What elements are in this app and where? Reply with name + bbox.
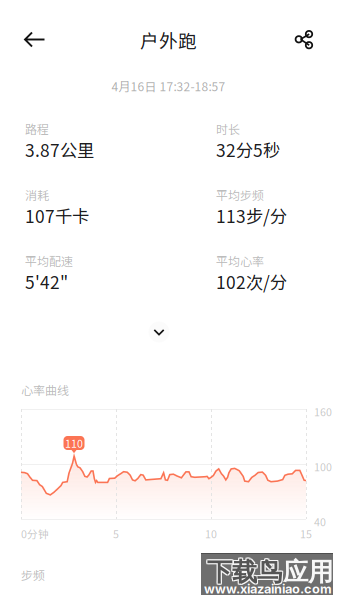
staticText: 下载鸟 [206,557,281,589]
staticText: 32分5秒 [216,137,280,162]
staticText: 下载鸟 [207,555,282,587]
button[interactable]: Show more [141,314,177,350]
staticText: 平均步频 [216,186,264,203]
staticText: 下载鸟 [208,557,283,589]
staticText: www.xiazainiao.com [204,581,332,596]
staticText: 下载鸟 [207,557,282,589]
staticText: 步频 [21,566,45,583]
staticText: 102次/分 [216,269,287,294]
staticText: 0分钟 [21,526,49,541]
staticText: 40 [314,514,326,529]
button[interactable]: Share [281,17,325,61]
staticText: 5'42" [25,269,68,294]
staticText: 下载鸟 [206,556,281,588]
staticText: 5 [113,526,119,541]
staticText: 107千卡 [25,203,89,228]
staticText: 下载鸟 [206,555,281,587]
staticText: 路程 [25,120,49,137]
staticText: 心率曲线 [21,381,69,398]
button[interactable]: Back [12,17,56,61]
staticText: 平均心率 [216,252,264,269]
staticText: 4月16日 17:32-18:57 [111,77,225,95]
staticText: 应用 [283,556,333,588]
staticText: 10 [205,526,217,541]
staticText: 160 [314,404,332,419]
staticText: 消耗 [25,186,49,203]
staticText: 3.87公里 [25,137,94,162]
staticText: 100 [314,459,332,474]
staticText: 户外跑 [140,26,197,53]
staticText: 15 [300,526,312,541]
staticText: 113步/分 [216,203,287,228]
staticText: 110 [65,435,83,451]
staticText: 下载鸟 [208,555,283,587]
staticText: 下载鸟 [207,556,282,588]
staticText: 下载鸟 [208,556,283,588]
staticText: 时长 [216,120,240,137]
staticText: 平均配速 [25,252,73,269]
